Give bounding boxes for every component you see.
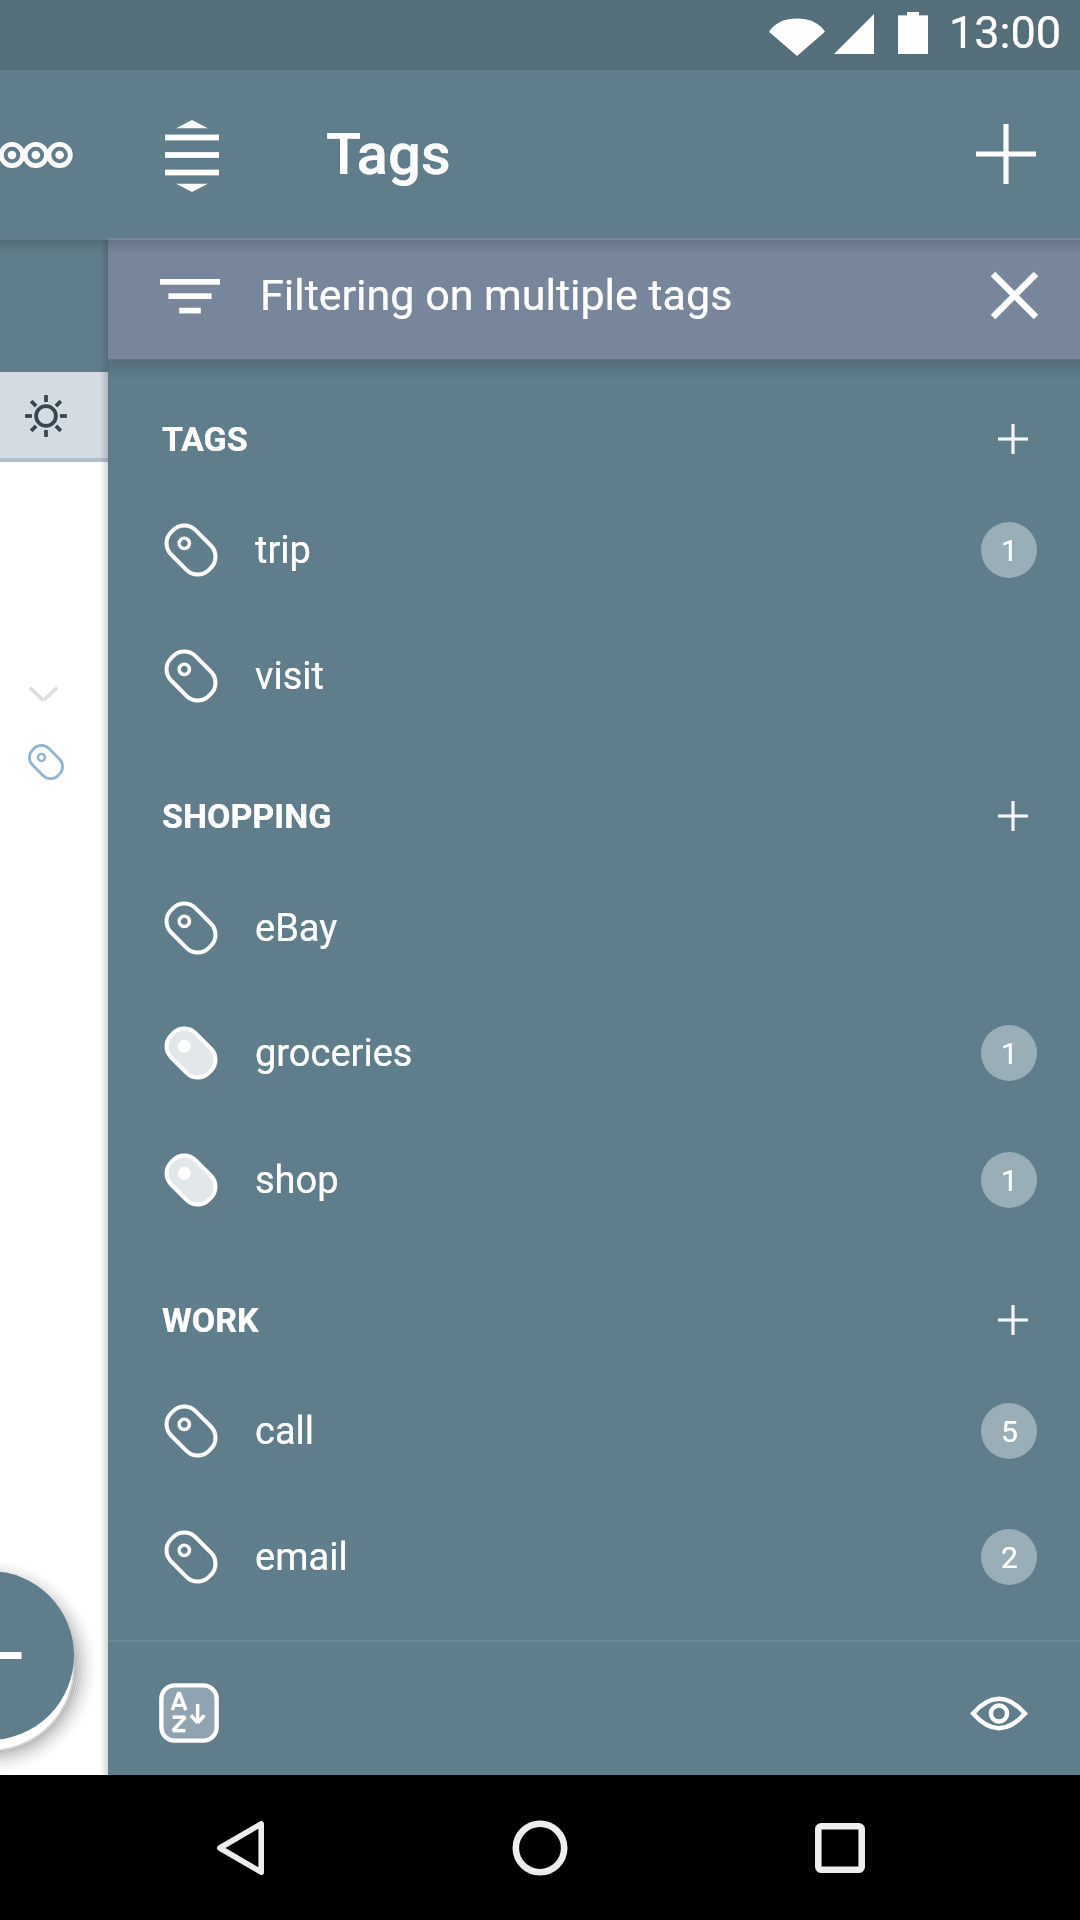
button[interactable]: Back	[196, 1804, 284, 1892]
button[interactable]: Add tag to TAGS	[965, 391, 1061, 487]
button[interactable]: email	[108, 1494, 1080, 1620]
staticText: 13:00	[949, 6, 1062, 59]
staticText: call	[255, 1409, 315, 1454]
staticText: SHOPPING	[162, 796, 332, 836]
button[interactable]: trip	[108, 487, 1080, 613]
staticText: 2	[1001, 1540, 1018, 1575]
button[interactable]: Add tag to WORK	[965, 1272, 1061, 1368]
button[interactable]: Add tag to SHOPPING	[965, 768, 1061, 864]
staticText: 1	[1001, 533, 1018, 568]
button[interactable]: Filtering on multiple tags	[108, 234, 1080, 356]
button[interactable]: groceries	[108, 990, 1080, 1116]
button[interactable]: visit	[108, 613, 1080, 739]
staticText: Filtering on multiple tags	[260, 270, 733, 320]
button[interactable]: Home	[496, 1804, 584, 1892]
staticText: eBay	[255, 906, 338, 951]
staticText: TAGS	[162, 419, 248, 459]
staticText: 1	[1001, 1036, 1018, 1071]
staticText: 1	[1001, 1163, 1018, 1198]
button[interactable]: Expand collapse all	[140, 104, 244, 208]
button[interactable]: Sort alphabetically	[157, 1681, 221, 1745]
button[interactable]: shop	[108, 1117, 1080, 1243]
staticText: visit	[255, 654, 324, 699]
staticText: trip	[255, 528, 311, 573]
staticText: Tags	[326, 120, 451, 188]
staticText: email	[255, 1535, 348, 1580]
staticText: WORK	[162, 1300, 259, 1340]
button[interactable]: Recents	[796, 1804, 884, 1892]
button[interactable]: Toggle visibility	[952, 1678, 1046, 1748]
button[interactable]: Add note	[0, 1571, 74, 1740]
button[interactable]: Clear filter	[966, 247, 1062, 343]
button[interactable]: eBay	[108, 865, 1080, 991]
button[interactable]: Add tag	[954, 102, 1058, 206]
staticText: shop	[255, 1158, 339, 1203]
button[interactable]: call	[108, 1368, 1080, 1494]
staticText: groceries	[255, 1031, 413, 1076]
staticText: 5	[1001, 1414, 1018, 1449]
